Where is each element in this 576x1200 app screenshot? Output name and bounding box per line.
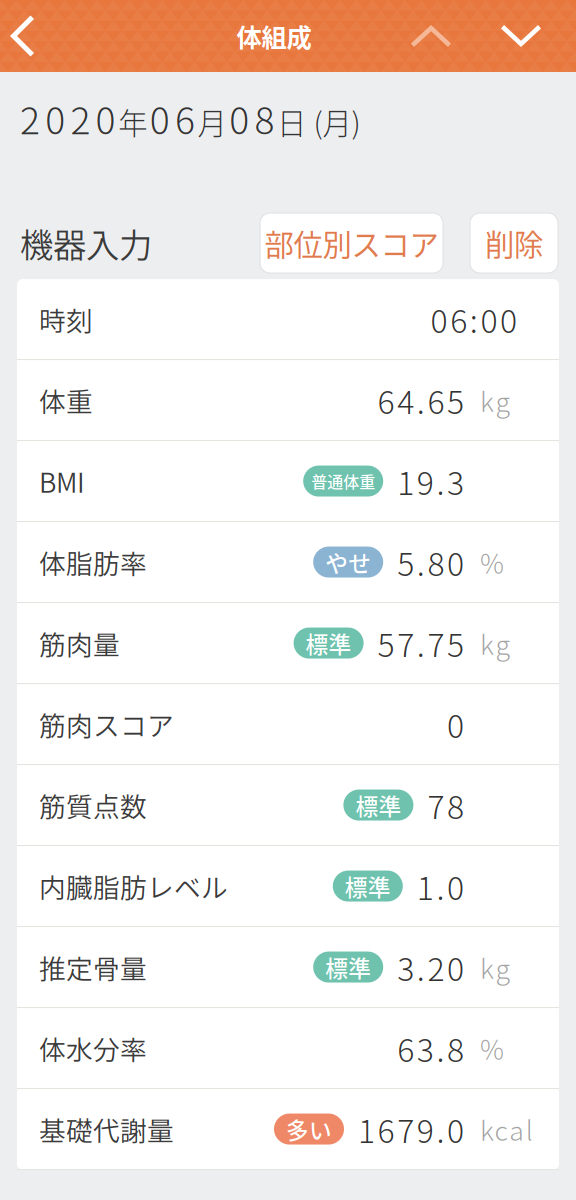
staticText: 標準	[306, 627, 352, 659]
staticText: 筋質点数	[39, 786, 147, 824]
staticText: 多い	[286, 1113, 332, 1145]
staticText: 0	[150, 91, 170, 145]
staticText: 基礎代謝量	[39, 1110, 174, 1148]
staticText: 57.75	[378, 620, 464, 666]
staticText: 日	[277, 100, 306, 143]
staticText: 普通体重	[311, 469, 375, 493]
staticText: 1.0	[417, 863, 464, 909]
staticText: 64.65	[378, 377, 464, 423]
button[interactable]: Back	[0, 15, 34, 56]
button[interactable]: Previous day	[411, 25, 451, 47]
staticText: 時刻	[39, 300, 93, 338]
staticText: 月	[198, 100, 227, 143]
staticText: kg	[480, 948, 511, 986]
button[interactable]: Next day	[501, 25, 541, 47]
staticText: 2	[20, 91, 40, 145]
staticText: 06:00	[431, 296, 517, 342]
staticText: 63.8	[397, 1025, 464, 1071]
staticText: 19.3	[397, 458, 464, 504]
button[interactable]: 部位別スコア	[260, 213, 443, 273]
staticText: 体水分率	[39, 1029, 147, 1067]
staticText: %	[480, 543, 504, 581]
staticText: 0	[447, 701, 464, 747]
staticText: やせ	[325, 546, 371, 578]
staticText: 78	[427, 782, 464, 828]
staticText: 8	[254, 91, 274, 145]
staticText: 5.80	[397, 539, 464, 585]
staticText: kg	[480, 381, 511, 419]
staticText: kcal	[480, 1110, 533, 1148]
staticText: 標準	[345, 870, 391, 902]
staticText: BMI	[39, 462, 85, 500]
staticText: kg	[480, 624, 511, 662]
staticText: 0	[45, 91, 65, 145]
staticText: 年	[118, 100, 147, 143]
staticText: 標準	[355, 789, 401, 821]
staticText: 筋肉量	[39, 624, 120, 662]
staticText: 体組成	[236, 18, 311, 54]
staticText: 部位別スコア	[264, 222, 438, 264]
staticText: 体脂肪率	[39, 543, 147, 581]
staticText: 0	[229, 91, 249, 145]
staticText: 体重	[39, 381, 93, 419]
staticText: %	[480, 1029, 504, 1067]
staticText: 3.20	[397, 944, 464, 990]
staticText: 標準	[325, 951, 371, 983]
staticText: 1679.0	[358, 1106, 464, 1152]
staticText: 内臓脂肪レベル	[39, 867, 228, 905]
staticText: 筋肉スコア	[39, 705, 174, 743]
button[interactable]: 削除	[470, 213, 558, 273]
staticText: 6	[175, 91, 195, 145]
staticText: 0	[96, 91, 116, 145]
staticText: 機器入力	[20, 219, 152, 267]
staticText: 削除	[485, 222, 543, 264]
staticText: 推定骨量	[39, 948, 147, 986]
staticText: 2	[70, 91, 90, 145]
staticText: (月)	[314, 100, 361, 143]
